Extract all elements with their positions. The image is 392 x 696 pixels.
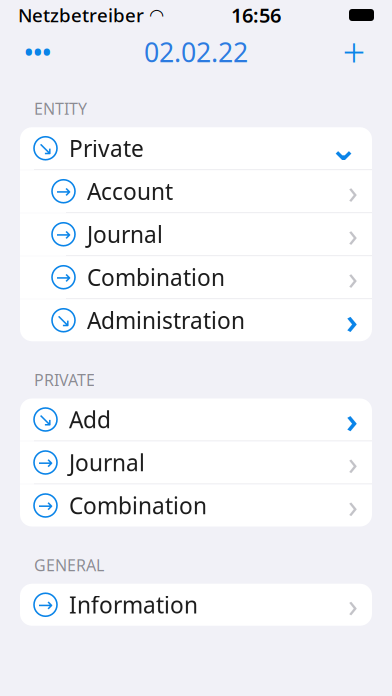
button[interactable]: More options <box>14 32 62 72</box>
staticText: Combination <box>69 490 207 520</box>
staticText: › <box>348 256 358 298</box>
staticText: ↘ <box>37 138 53 159</box>
button[interactable]: Add <box>330 32 378 72</box>
staticText: › <box>348 441 358 484</box>
staticText: ◠ <box>150 5 163 25</box>
staticText: ⌄ <box>329 129 358 168</box>
staticText: › <box>348 213 358 255</box>
staticText: → <box>37 495 53 516</box>
staticText: ENTITY <box>34 98 87 119</box>
staticText: → <box>37 594 53 615</box>
staticText: › <box>348 484 358 527</box>
button[interactable]: → <box>20 584 372 626</box>
staticText: Journal <box>87 219 163 249</box>
staticText: › <box>346 297 358 343</box>
staticText: Combination <box>87 262 225 292</box>
staticText: ••• <box>24 37 51 67</box>
button[interactable]: → <box>20 441 372 483</box>
button[interactable]: ↘ <box>20 299 372 341</box>
staticText: › <box>348 583 358 626</box>
staticText: Netzbetreiber <box>18 3 144 27</box>
staticText: Add <box>69 404 111 434</box>
staticText: › <box>348 170 358 212</box>
staticText: › <box>346 396 358 442</box>
staticText: PRIVATE <box>34 369 95 390</box>
button[interactable]: ↘ <box>20 398 372 440</box>
staticText: → <box>55 181 71 202</box>
staticText: ↘ <box>55 310 71 331</box>
button[interactable]: ↘ <box>20 127 372 169</box>
staticText: Private <box>69 133 144 163</box>
staticText: GENERAL <box>34 554 104 576</box>
staticText: ↘ <box>37 409 53 430</box>
staticText: Information <box>69 590 198 620</box>
staticText: 16:56 <box>231 2 281 28</box>
staticText: 02.02.22 <box>144 34 248 70</box>
staticText: + <box>342 25 365 78</box>
staticText: Journal <box>69 447 145 477</box>
button[interactable]: → <box>20 256 372 298</box>
button[interactable]: → <box>20 484 372 526</box>
staticText: → <box>55 224 71 245</box>
staticText: Account <box>87 176 173 206</box>
staticText: → <box>55 267 71 288</box>
button[interactable]: → <box>20 213 372 255</box>
button[interactable]: → <box>20 170 372 212</box>
staticText: Administration <box>87 305 245 335</box>
staticText: → <box>37 452 53 473</box>
